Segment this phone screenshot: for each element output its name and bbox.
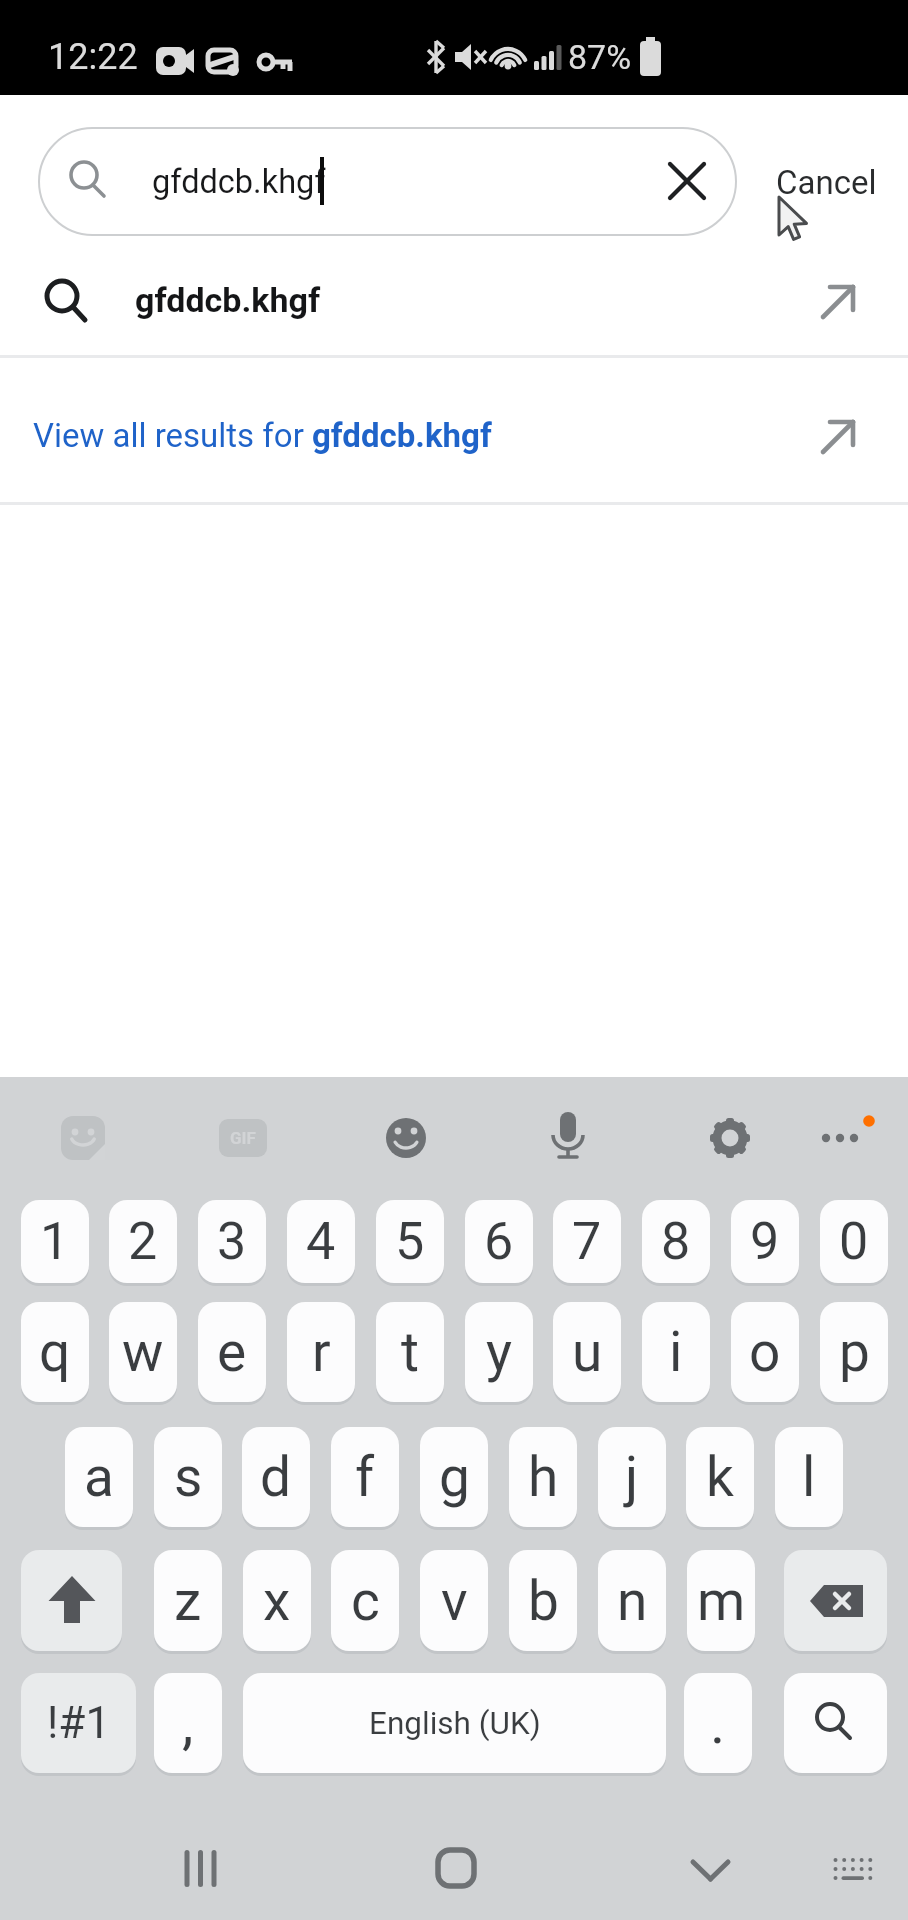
button[interactable] <box>58 1113 108 1163</box>
button[interactable] <box>784 1673 887 1773</box>
button[interactable]: c <box>331 1550 399 1651</box>
staticText: a <box>84 1445 114 1509</box>
staticText: l <box>802 1445 816 1509</box>
staticText: m <box>697 1569 746 1633</box>
button[interactable]: 7 <box>553 1200 621 1283</box>
button[interactable]: f <box>331 1427 399 1527</box>
staticText: c <box>351 1569 380 1633</box>
button[interactable]: r <box>287 1302 355 1402</box>
button[interactable]: v <box>420 1550 488 1651</box>
button[interactable] <box>544 1108 592 1164</box>
button[interactable]: b <box>509 1550 577 1651</box>
staticText: GIF <box>230 1128 256 1148</box>
staticText: d <box>260 1445 292 1509</box>
button[interactable] <box>660 154 715 209</box>
button[interactable]: k <box>686 1427 754 1527</box>
button[interactable]: l <box>775 1427 843 1527</box>
button[interactable]: 6 <box>465 1200 533 1283</box>
button[interactable]: w <box>109 1302 177 1402</box>
staticText: gfddcb.khgf <box>152 163 326 201</box>
button[interactable]: 1 <box>21 1200 89 1283</box>
button[interactable]: Cancel <box>756 140 896 224</box>
staticText: English (UK) <box>369 1705 541 1742</box>
button[interactable] <box>706 1114 754 1162</box>
button[interactable]: e <box>198 1302 266 1402</box>
button[interactable]: 5 <box>376 1200 444 1283</box>
button[interactable]: !#1 <box>21 1673 136 1773</box>
button[interactable]: GIF <box>219 1119 267 1157</box>
staticText: Cancel <box>776 163 877 202</box>
button[interactable]: 2 <box>109 1200 177 1283</box>
staticText: o <box>749 1320 781 1384</box>
button[interactable] <box>170 1838 236 1900</box>
staticText: 2 <box>128 1211 158 1272</box>
button[interactable]: o <box>731 1302 799 1402</box>
button[interactable]: English (UK) <box>243 1673 666 1773</box>
button[interactable]: z <box>154 1550 222 1651</box>
button[interactable]: j <box>598 1427 666 1527</box>
button[interactable]: q <box>21 1302 89 1402</box>
staticText: 6 <box>484 1211 514 1272</box>
staticText: !#1 <box>47 1697 111 1749</box>
button[interactable] <box>425 1838 487 1900</box>
button[interactable]: d <box>242 1427 310 1527</box>
button[interactable] <box>0 255 908 350</box>
staticText: p <box>839 1320 870 1384</box>
staticText: , <box>182 1689 194 1757</box>
staticText: 87% <box>568 37 632 77</box>
staticText: k <box>706 1445 734 1509</box>
button[interactable]: n <box>598 1550 666 1651</box>
staticText: gfddcb.khgf <box>135 280 321 320</box>
staticText: i <box>669 1320 683 1384</box>
staticText: e <box>217 1320 247 1384</box>
button[interactable] <box>382 1114 430 1162</box>
staticText: 9 <box>750 1211 780 1272</box>
staticText: 5 <box>395 1211 425 1272</box>
button[interactable]: p <box>820 1302 888 1402</box>
button[interactable]: s <box>154 1427 222 1527</box>
button[interactable]: y <box>465 1302 533 1402</box>
button[interactable]: . <box>684 1673 752 1773</box>
staticText: r <box>312 1320 331 1384</box>
staticText: View all results for gfddcb.khgf <box>33 416 492 455</box>
button[interactable]: a <box>65 1427 133 1527</box>
button[interactable]: 3 <box>198 1200 266 1283</box>
staticText: x <box>263 1569 291 1633</box>
staticText: 0 <box>839 1211 869 1272</box>
button[interactable] <box>784 1550 887 1651</box>
staticText: h <box>528 1445 559 1509</box>
button[interactable]: 9 <box>731 1200 799 1283</box>
staticText: w <box>122 1320 164 1384</box>
button[interactable]: 4 <box>287 1200 355 1283</box>
staticText: 3 <box>217 1211 247 1272</box>
staticText: z <box>174 1569 202 1633</box>
staticText: g <box>439 1445 470 1509</box>
button[interactable] <box>680 1838 742 1900</box>
button[interactable]: View all results for gfddcb.khgf <box>0 390 908 480</box>
button[interactable] <box>812 1110 882 1166</box>
button[interactable]: h <box>509 1427 577 1527</box>
staticText: 1 <box>40 1211 70 1272</box>
button[interactable] <box>822 1838 888 1900</box>
button[interactable]: m <box>687 1550 755 1651</box>
staticText: f <box>355 1445 375 1509</box>
button[interactable]: , <box>154 1673 222 1773</box>
staticText: q <box>39 1320 71 1384</box>
staticText: j <box>625 1445 639 1509</box>
staticText: n <box>617 1569 648 1633</box>
staticText: y <box>486 1320 513 1384</box>
button[interactable]: g <box>420 1427 488 1527</box>
button[interactable]: i <box>642 1302 710 1402</box>
button[interactable]: 8 <box>642 1200 710 1283</box>
button[interactable]: t <box>376 1302 444 1402</box>
button[interactable] <box>38 127 737 236</box>
button[interactable]: x <box>243 1550 311 1651</box>
button[interactable]: u <box>553 1302 621 1402</box>
staticText: b <box>528 1569 559 1633</box>
staticText: 12:22 <box>48 36 138 78</box>
staticText: v <box>441 1569 468 1633</box>
button[interactable]: 0 <box>820 1200 888 1283</box>
staticText: 4 <box>306 1211 336 1272</box>
staticText: u <box>572 1320 603 1384</box>
button[interactable] <box>21 1550 122 1651</box>
